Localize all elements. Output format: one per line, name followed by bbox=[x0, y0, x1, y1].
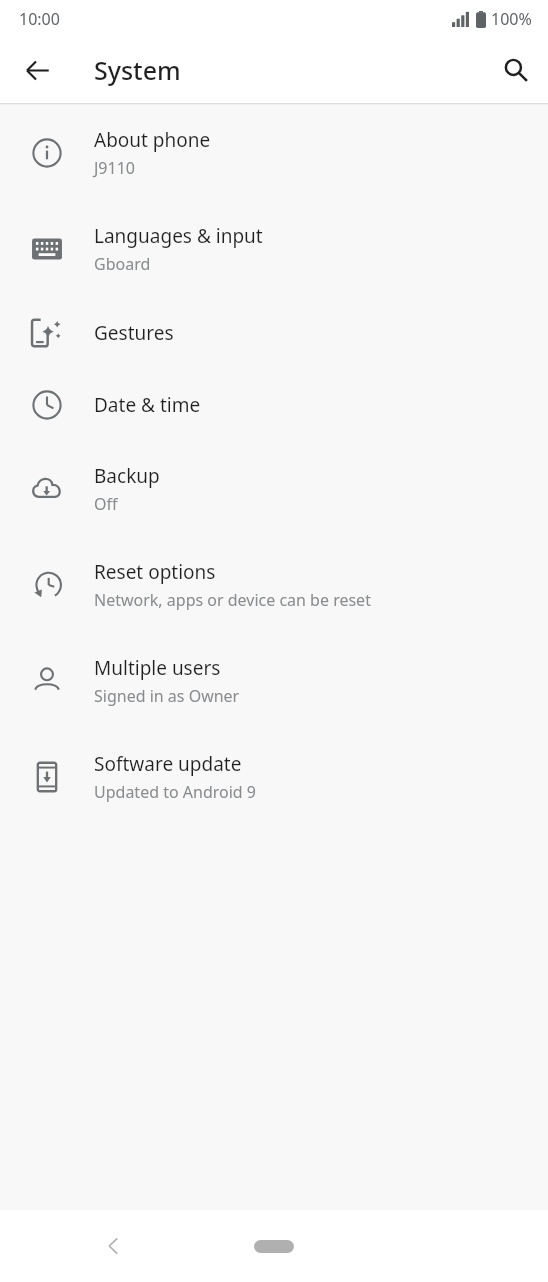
button[interactable]: Gestures bbox=[0, 297, 548, 369]
staticText: J9110 bbox=[94, 157, 135, 179]
staticText: Reset options bbox=[94, 559, 216, 585]
button[interactable]: Multiple users bbox=[0, 633, 548, 729]
staticText: Languages & input bbox=[94, 223, 263, 249]
button[interactable]: Search bbox=[492, 46, 540, 94]
button[interactable]: Date & time bbox=[0, 369, 548, 441]
staticText: 100% bbox=[491, 8, 532, 30]
staticText: Signed in as Owner bbox=[94, 685, 240, 707]
staticText: Gboard bbox=[94, 253, 151, 275]
staticText: Off bbox=[94, 493, 118, 515]
staticText: Date & time bbox=[94, 392, 201, 418]
button[interactable]: Back bbox=[90, 1222, 138, 1270]
button[interactable]: Languages & input bbox=[0, 201, 548, 297]
button[interactable]: Software update bbox=[0, 729, 548, 825]
staticText: Backup bbox=[94, 463, 160, 489]
button[interactable]: About phone bbox=[0, 105, 548, 201]
button[interactable]: Home bbox=[246, 1231, 302, 1261]
staticText: About phone bbox=[94, 127, 211, 153]
button[interactable]: Backup bbox=[0, 441, 548, 537]
staticText: Gestures bbox=[94, 320, 174, 346]
staticText: Updated to Android 9 bbox=[94, 781, 256, 803]
staticText: System bbox=[94, 53, 181, 87]
staticText: Software update bbox=[94, 751, 242, 777]
staticText: Multiple users bbox=[94, 655, 221, 681]
staticText: Network, apps or device can be reset bbox=[94, 589, 371, 611]
staticText: 10:00 bbox=[19, 8, 60, 30]
button[interactable]: Back bbox=[13, 46, 61, 94]
button[interactable]: Reset options bbox=[0, 537, 548, 633]
